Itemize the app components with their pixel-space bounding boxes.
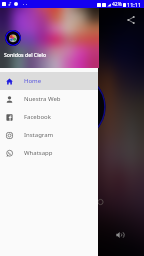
button[interactable]: Nuestra Web [0,90,98,108]
button[interactable]: Volume [114,229,126,241]
staticText: Facebook [24,113,51,121]
staticText: 42% [112,1,122,8]
staticText: Instagram [24,131,54,139]
staticText: Home [24,77,42,85]
staticText: 11:11 [127,1,142,8]
button[interactable]: Home [0,72,98,90]
button[interactable]: Instagram [0,126,98,144]
button[interactable]: Facebook [0,108,98,126]
button[interactable]: Whatsapp [0,144,98,162]
staticText: Nuestra Web [24,95,61,103]
button[interactable]: Share [124,13,137,26]
staticText: Sonidos del Cielo [4,51,47,58]
staticText: Whatsapp [24,149,53,157]
